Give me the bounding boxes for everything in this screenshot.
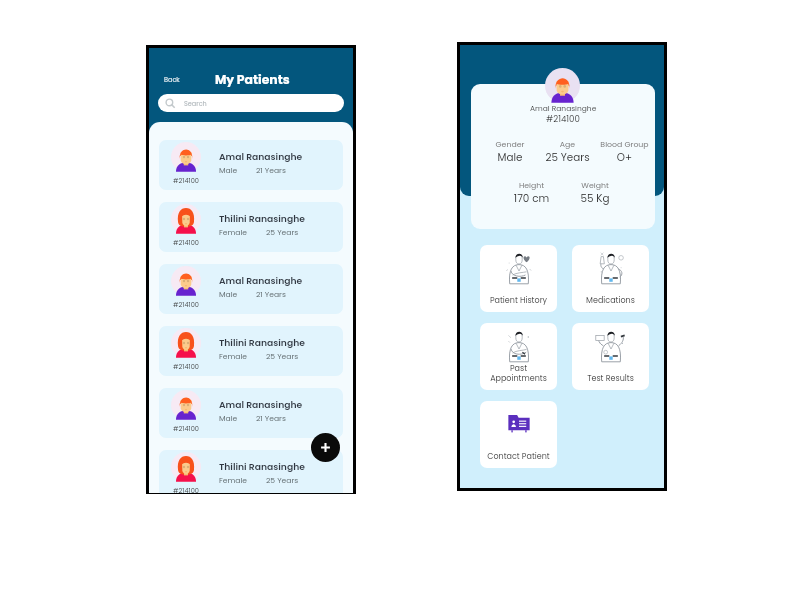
staticText: #214100 <box>173 424 199 433</box>
staticText: Search <box>184 99 207 108</box>
staticText: Amal Ranasinghe <box>219 150 303 163</box>
staticText: Male <box>481 150 539 165</box>
button[interactable]: Amal Ranasinghe <box>471 84 655 229</box>
staticText: Contact Patient <box>480 451 557 462</box>
button[interactable]: #214100 <box>159 202 343 252</box>
staticText: 21 Years <box>256 289 286 300</box>
staticText: Amal Ranasinghe <box>219 274 303 287</box>
staticText: Gender <box>481 139 539 150</box>
staticText: 25 Years <box>266 351 299 362</box>
staticText: O+ <box>596 150 653 165</box>
staticText: 25 Years <box>266 227 299 238</box>
staticText: Thilini Ranasinghe <box>219 460 305 473</box>
staticText: Female <box>219 475 248 486</box>
button[interactable]: #214100 <box>159 326 343 376</box>
staticText: Amal Ranasinghe <box>530 103 597 113</box>
staticText: Male <box>219 165 238 176</box>
button[interactable]: Add patient <box>311 433 340 462</box>
button[interactable]: #214100 <box>159 140 343 190</box>
staticText: 21 Years <box>256 413 286 424</box>
staticText: Thilini Ranasinghe <box>219 212 305 225</box>
staticText: #214100 <box>173 176 199 185</box>
staticText: Weight <box>563 180 627 191</box>
staticText: 25 Years <box>266 475 299 486</box>
staticText: 55 Kg <box>563 191 627 206</box>
button[interactable]: Contact Patient <box>480 401 557 468</box>
button[interactable]: Test Results <box>572 323 649 390</box>
staticText: 21 Years <box>256 165 286 176</box>
button[interactable]: #214100 <box>159 450 343 493</box>
button[interactable]: #214100 <box>159 388 343 438</box>
button[interactable]: Patient History <box>480 245 557 312</box>
staticText: Blood Group <box>596 139 653 150</box>
staticText: #214100 <box>173 300 199 309</box>
staticText: 25 Years <box>539 150 596 165</box>
staticText: Female <box>219 227 248 238</box>
staticText: Male <box>219 289 238 300</box>
staticText: Patient History <box>480 295 557 306</box>
button[interactable]: #214100 <box>159 264 343 314</box>
staticText: #214100 <box>173 238 199 247</box>
staticText: Thilini Ranasinghe <box>219 336 305 349</box>
button[interactable]: Back <box>149 72 188 87</box>
staticText: Age <box>539 139 596 150</box>
staticText: Amal Ranasinghe <box>219 398 303 411</box>
staticText: 170 cm <box>500 191 563 206</box>
staticText: Past Appointments <box>480 363 557 384</box>
staticText: Height <box>500 180 563 191</box>
button[interactable]: Past Appointments <box>480 323 557 390</box>
staticText: Test Results <box>572 373 649 384</box>
staticText: Female <box>219 351 248 362</box>
staticText: Male <box>219 413 238 424</box>
button[interactable]: Medications <box>572 245 649 312</box>
staticText: #214100 <box>546 113 580 125</box>
staticText: #214100 <box>173 362 199 371</box>
staticText: #214100 <box>173 486 199 493</box>
staticText: Medications <box>572 295 649 306</box>
staticText: My Patients <box>215 71 290 88</box>
button[interactable]: Search <box>158 94 344 112</box>
